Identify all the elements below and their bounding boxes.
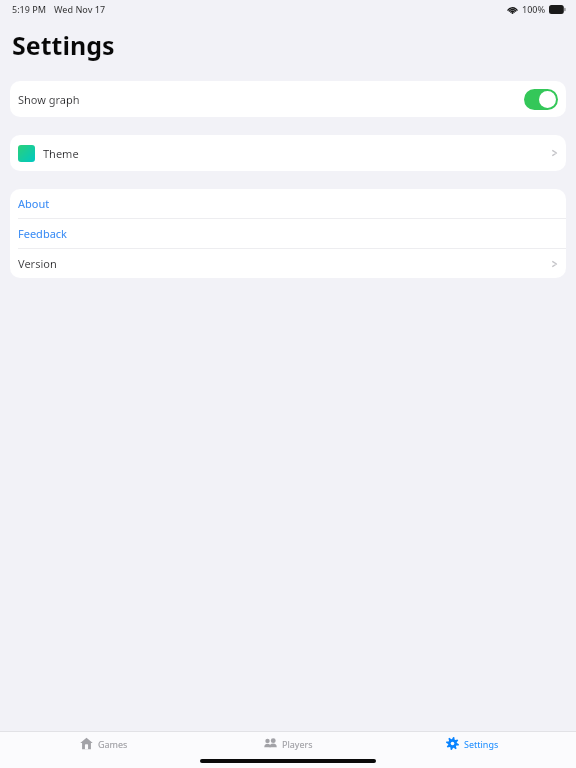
button[interactable]: Show graph (10, 81, 566, 117)
button[interactable]: About (10, 189, 566, 218)
staticText: Wed Nov 17 (54, 3, 106, 15)
button[interactable]: Theme (10, 135, 566, 171)
button[interactable]: Show graph toggle (524, 89, 558, 110)
staticText: Theme (43, 146, 79, 161)
button[interactable]: Feedback (10, 219, 566, 248)
staticText: About (18, 196, 50, 211)
staticText: Games (98, 738, 128, 750)
staticText: 100% (522, 3, 546, 15)
button[interactable]: Settings (380, 732, 564, 755)
staticText: Settings (464, 738, 499, 750)
staticText: 5:19 PM (12, 3, 46, 15)
staticText: Settings (12, 28, 115, 62)
button[interactable]: Games (12, 732, 196, 755)
staticText: Version (18, 256, 57, 271)
staticText: Show graph (18, 92, 80, 107)
button[interactable]: Version (10, 249, 566, 278)
staticText: Feedback (18, 226, 67, 241)
staticText: Players (282, 738, 313, 750)
button[interactable]: Players (196, 732, 380, 755)
